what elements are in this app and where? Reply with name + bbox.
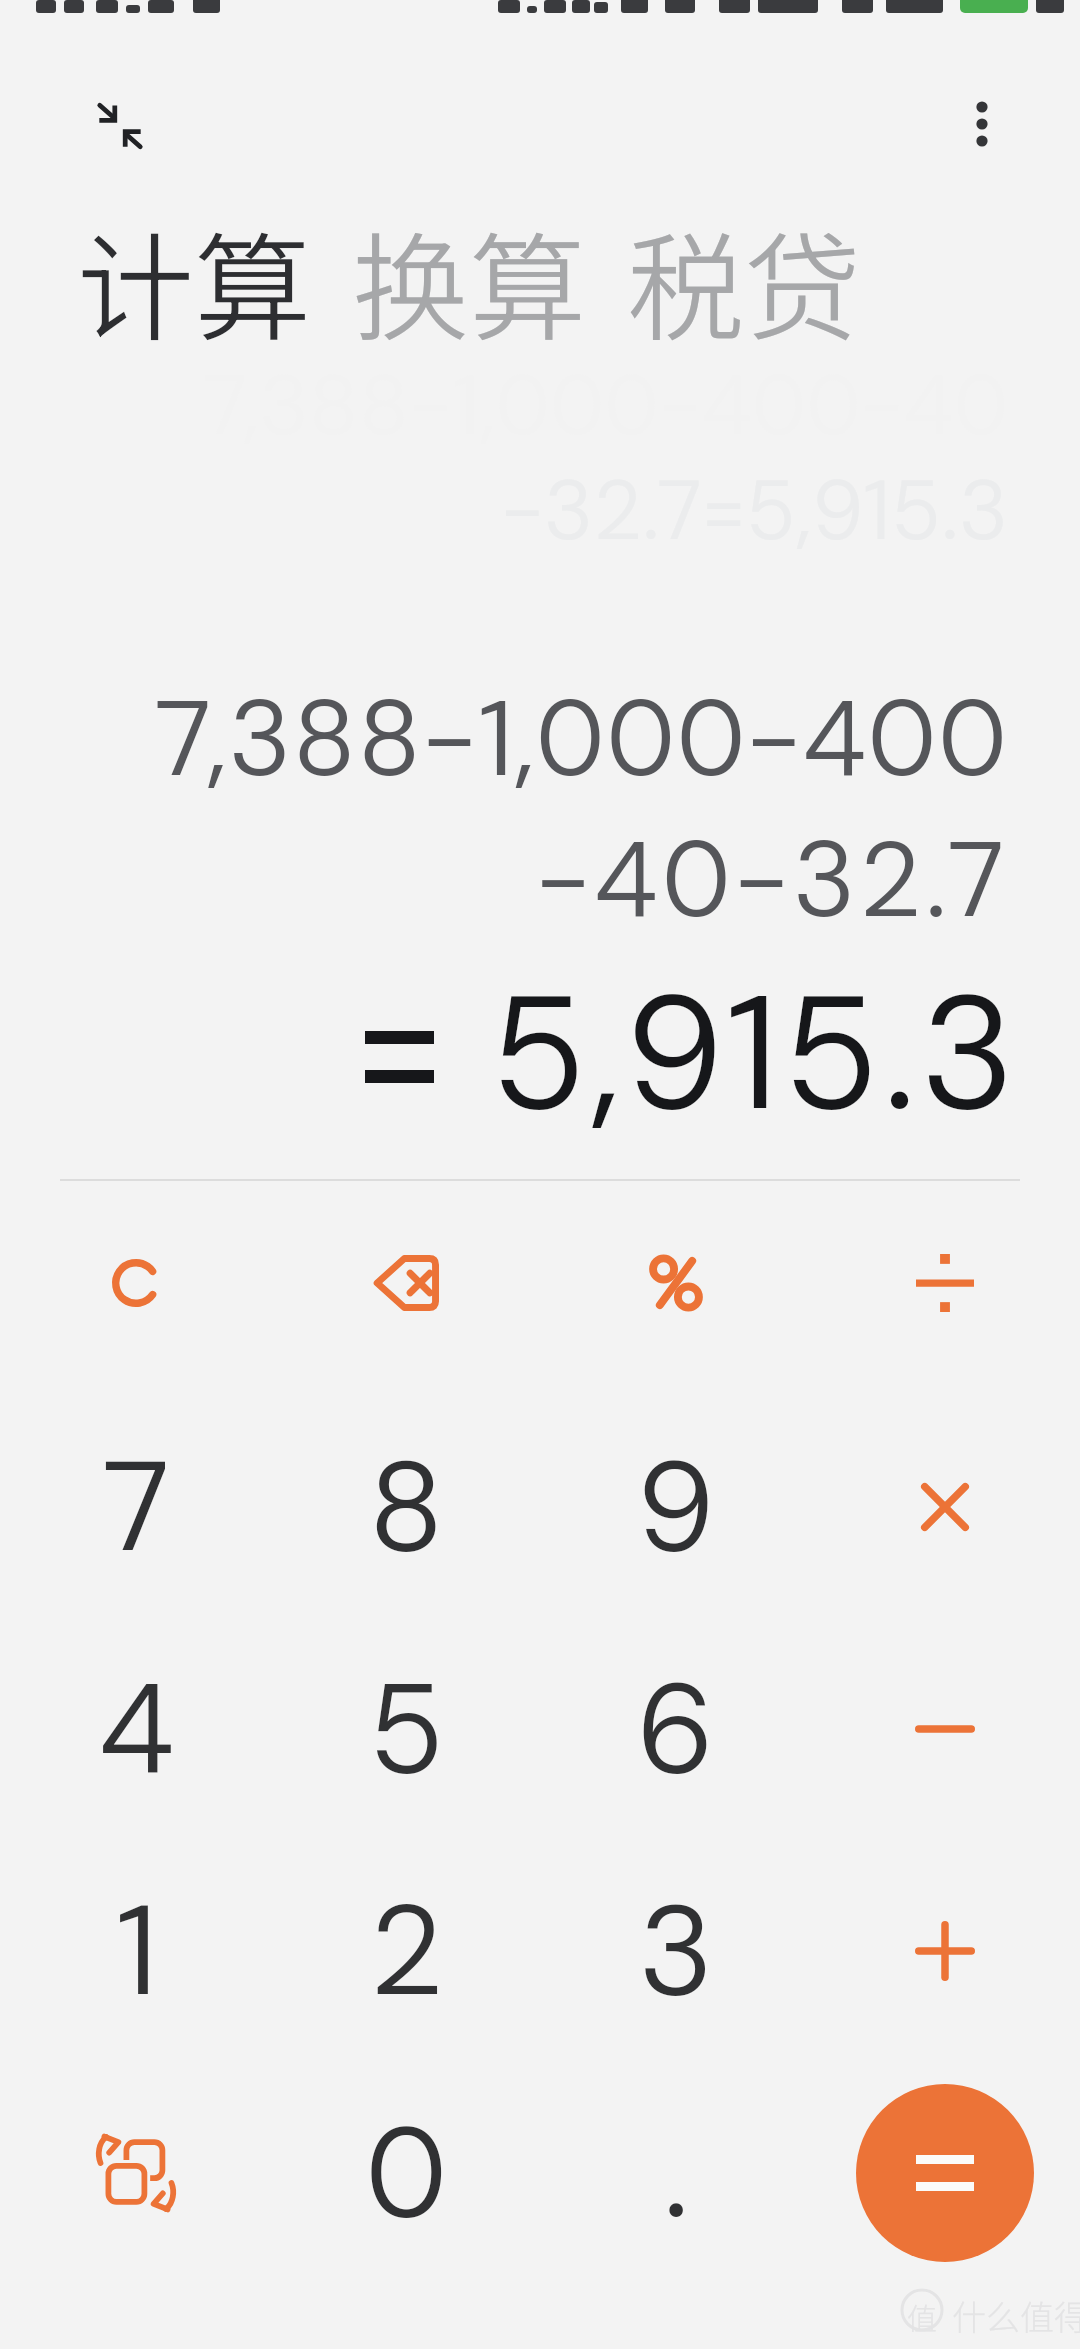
- button[interactable]: Minus: [835, 1619, 1055, 1839]
- staticText: 什么值得买: [952, 2291, 1080, 2340]
- staticText: 0: [365, 2091, 448, 2255]
- button[interactable]: 0: [296, 2063, 516, 2283]
- button[interactable]: More options: [926, 68, 1038, 180]
- button[interactable]: Divide: [835, 1173, 1055, 1393]
- staticText: 4: [98, 1647, 175, 1811]
- button[interactable]: Multiply: [835, 1397, 1055, 1617]
- staticText: 5,915.3: [0, 950, 1018, 1157]
- staticText: -40-32.7: [0, 811, 1008, 949]
- staticText: 6: [636, 1647, 716, 1811]
- staticText: 2: [369, 1869, 444, 2033]
- staticText: 9: [636, 1425, 716, 1589]
- button[interactable]: 5: [296, 1619, 516, 1839]
- button[interactable]: 计算: [77, 195, 312, 364]
- button[interactable]: 4: [26, 1619, 246, 1839]
- button[interactable]: 7: [26, 1397, 246, 1617]
- staticText: 税贷: [627, 195, 862, 364]
- staticText: 7,388-1,000-400: [0, 670, 1008, 808]
- button[interactable]: Percent: [566, 1173, 786, 1393]
- button[interactable]: Plus: [835, 1841, 1055, 2061]
- staticText: 7: [102, 1425, 171, 1589]
- button[interactable]: 8: [296, 1397, 516, 1617]
- button[interactable]: 换算: [352, 195, 587, 364]
- button[interactable]: .: [566, 2063, 786, 2283]
- staticText: 1: [115, 1869, 158, 2033]
- staticText: 3: [638, 1869, 714, 2033]
- button[interactable]: 1: [26, 1841, 246, 2061]
- staticText: 换算: [352, 195, 587, 364]
- button[interactable]: 9: [566, 1397, 786, 1617]
- button[interactable]: Clear: [26, 1173, 246, 1393]
- staticText: .: [663, 2091, 690, 2255]
- button[interactable]: Collapse: [64, 70, 176, 182]
- staticText: 值: [907, 2295, 937, 2338]
- button[interactable]: 6: [566, 1619, 786, 1839]
- button[interactable]: 2: [296, 1841, 516, 2061]
- staticText: 计算: [77, 195, 312, 364]
- button[interactable]: 税贷: [627, 195, 862, 364]
- staticText: 8: [368, 1425, 445, 1589]
- button[interactable]: Unit conversion: [26, 2063, 246, 2283]
- button[interactable]: 3: [566, 1841, 786, 2061]
- button[interactable]: Backspace: [296, 1173, 516, 1393]
- button[interactable]: Equals: [856, 2084, 1034, 2262]
- staticText: 5: [368, 1647, 445, 1811]
